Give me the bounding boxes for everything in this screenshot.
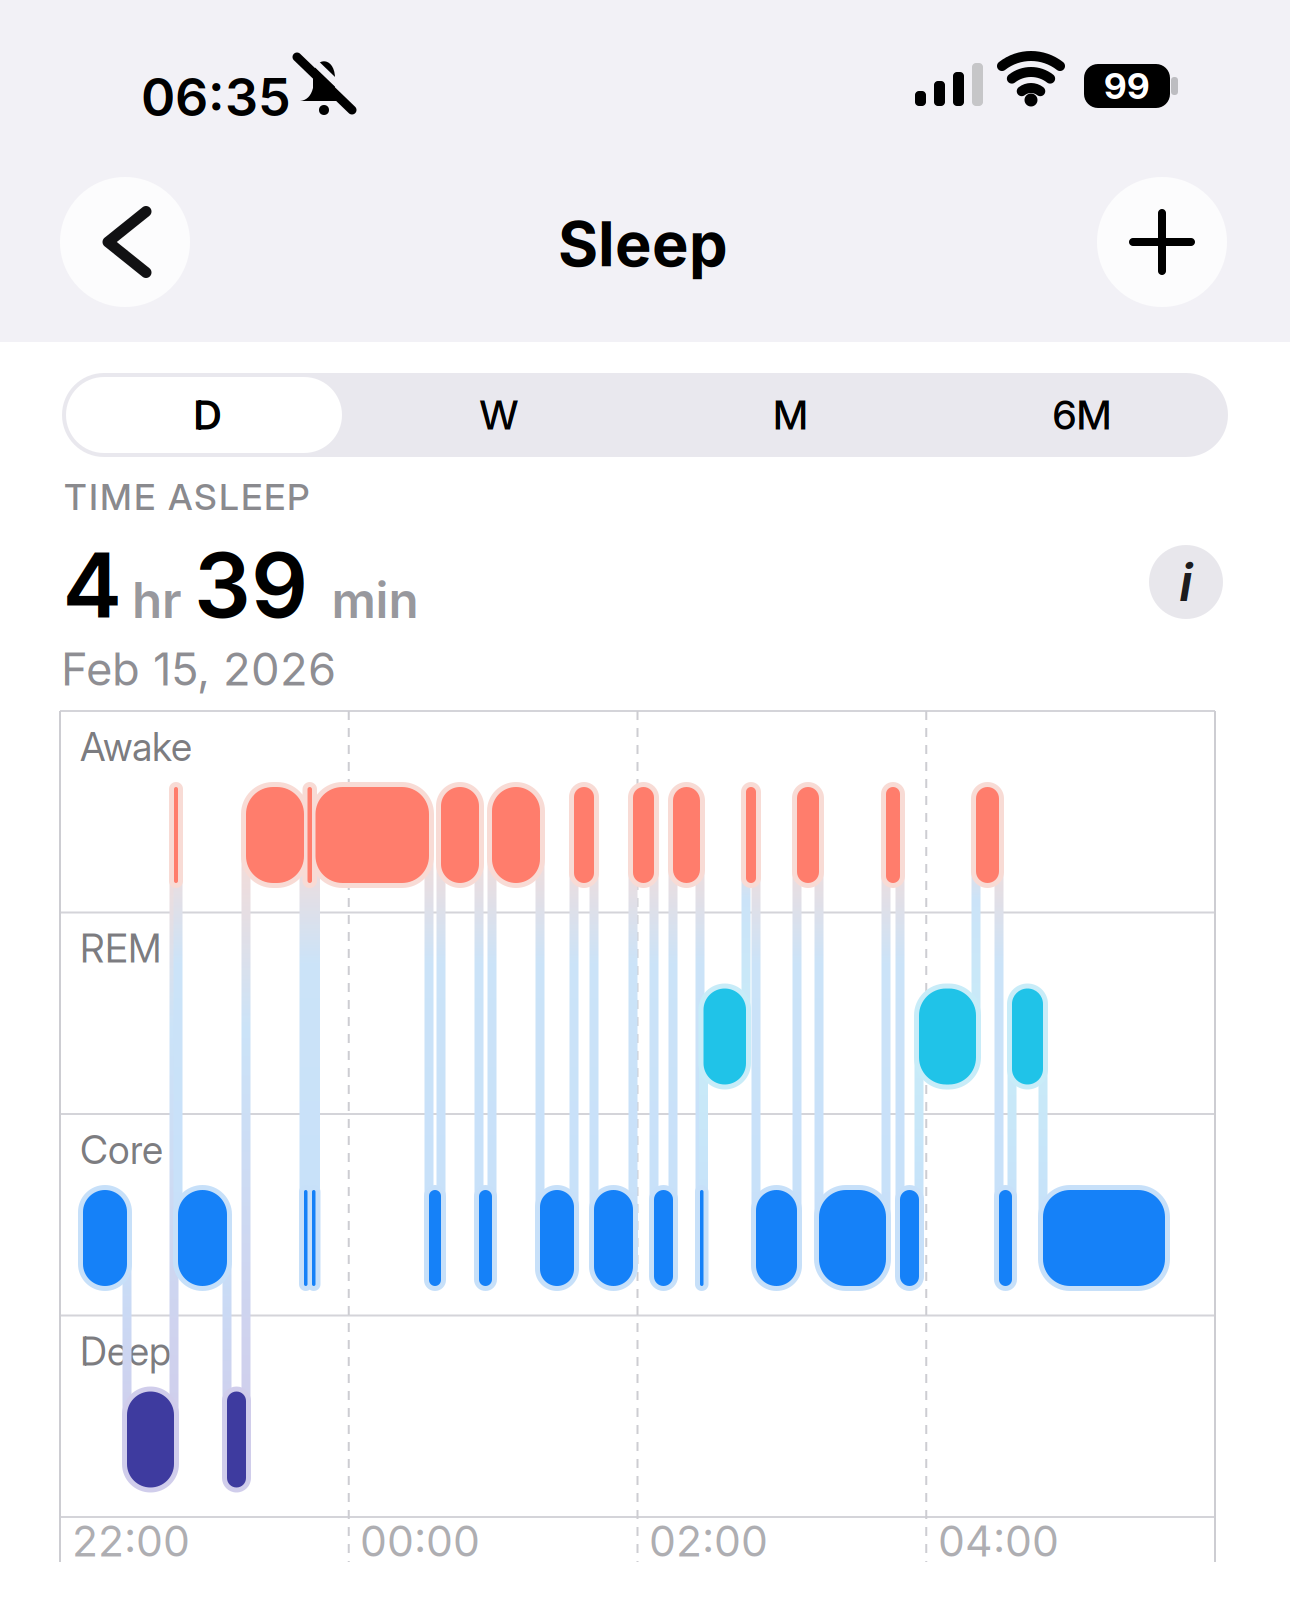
button[interactable]: Back (60, 177, 190, 307)
staticText: Deep (80, 1329, 171, 1374)
staticText: M (773, 391, 808, 439)
button[interactable]: D (66, 373, 349, 457)
staticText: i (1179, 551, 1193, 613)
staticText: 06:35 (141, 66, 291, 128)
staticText: 04:00 (938, 1516, 1059, 1566)
staticText: 6M (1052, 391, 1111, 439)
staticText: hr (132, 571, 182, 629)
staticText: 00:00 (360, 1516, 480, 1566)
staticText: W (479, 391, 518, 439)
staticText: 4 (62, 532, 121, 638)
button[interactable]: M (649, 373, 932, 457)
staticText: 22:00 (72, 1516, 190, 1566)
staticText: TIME ASLEEP (64, 476, 310, 518)
button[interactable]: 6M (940, 373, 1223, 457)
staticText: Awake (80, 724, 192, 770)
button[interactable]: Add Data (1097, 177, 1227, 307)
staticText: Core (80, 1127, 163, 1173)
staticText: D (193, 391, 221, 439)
staticText: 99 (1104, 65, 1150, 107)
button[interactable]: More Information (1149, 545, 1223, 619)
staticText: Sleep (558, 208, 728, 280)
staticText: min (331, 571, 418, 629)
staticText: Feb 15, 2026 (61, 642, 336, 696)
button[interactable]: W (357, 373, 640, 457)
staticText: 39 (194, 532, 308, 638)
staticText: 02:00 (649, 1516, 768, 1566)
staticText: REM (80, 926, 161, 971)
